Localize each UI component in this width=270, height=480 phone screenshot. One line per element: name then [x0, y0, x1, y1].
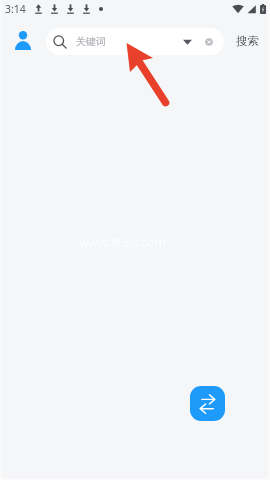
button[interactable]: 搜索	[231, 29, 264, 53]
button[interactable]: Swap	[190, 386, 225, 421]
button[interactable]: 关键词	[46, 28, 224, 55]
button[interactable]: Expand	[183, 39, 192, 45]
staticText: 关键词	[76, 35, 106, 48]
staticText: 3:14	[5, 2, 26, 16]
button[interactable]: Clear	[205, 38, 213, 46]
staticText: 搜索	[236, 34, 259, 48]
button[interactable]: Account	[10, 27, 36, 53]
